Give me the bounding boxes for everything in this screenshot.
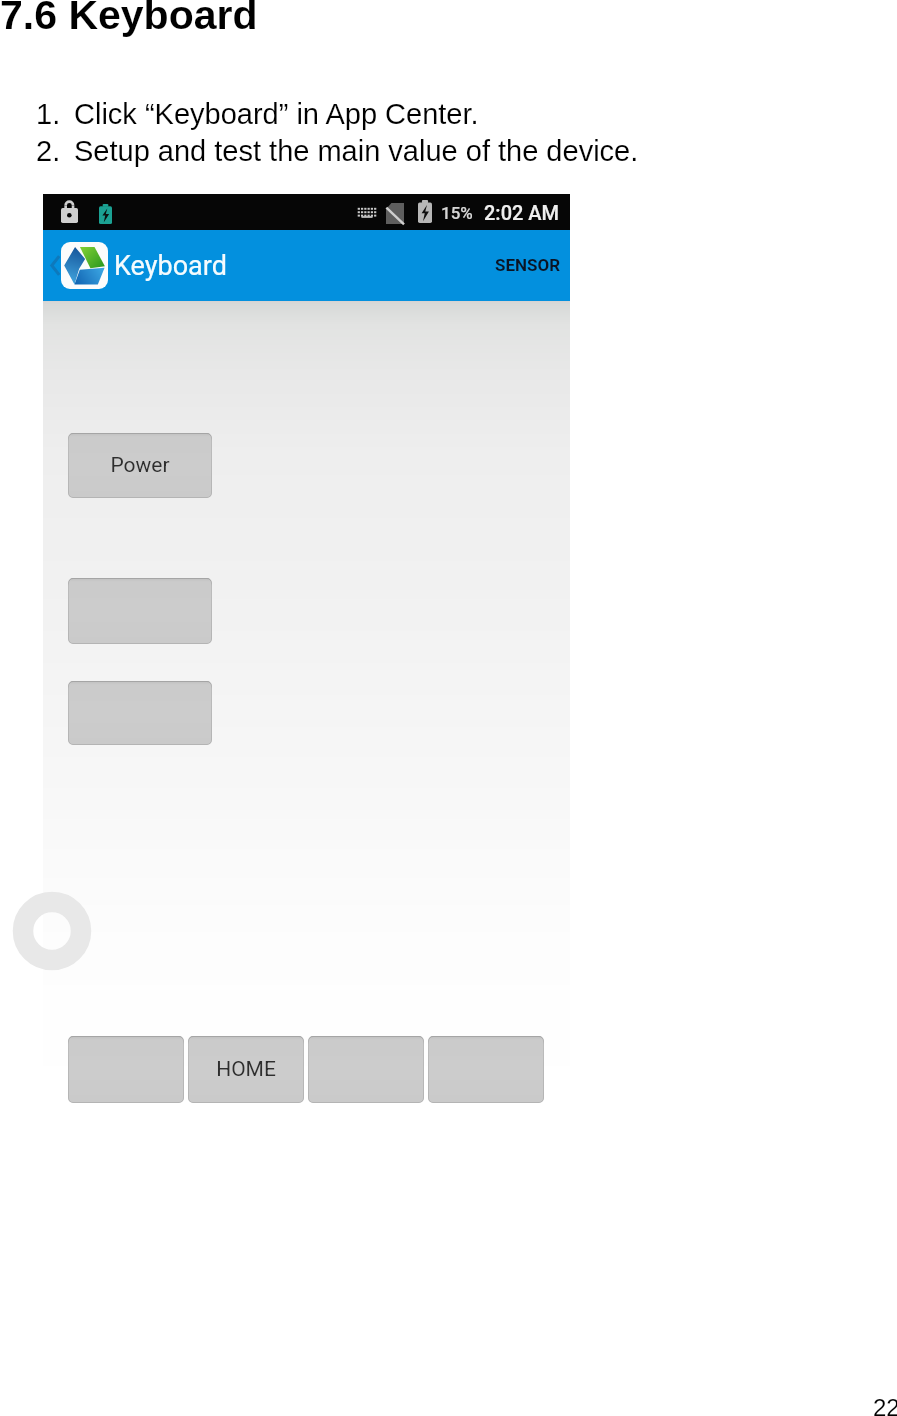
button[interactable] xyxy=(68,1036,184,1103)
button[interactable]: Back xyxy=(43,230,71,301)
staticText: 2:02 AM xyxy=(484,201,560,224)
staticText: 2. xyxy=(36,135,74,167)
staticText: Keyboard xyxy=(114,250,227,282)
button[interactable]: SENSOR xyxy=(479,242,577,288)
staticText: 1. xyxy=(36,98,74,130)
staticText: Click “Keyboard” in App Center. xyxy=(74,98,479,130)
staticText: HOME xyxy=(216,1057,276,1082)
staticText: Setup and test the main value of the dev… xyxy=(74,135,639,167)
button[interactable]: HOME xyxy=(188,1036,304,1103)
staticText: 7.6 Keyboard xyxy=(0,0,258,38)
staticText: SENSOR xyxy=(495,255,561,275)
button[interactable] xyxy=(308,1036,424,1103)
staticText: 22 xyxy=(873,1394,897,1416)
staticText: Power xyxy=(110,453,170,478)
button[interactable] xyxy=(428,1036,544,1103)
staticText: 15% xyxy=(441,203,473,223)
button[interactable] xyxy=(68,681,212,745)
button[interactable]: Power xyxy=(68,433,212,498)
button[interactable] xyxy=(68,578,212,644)
